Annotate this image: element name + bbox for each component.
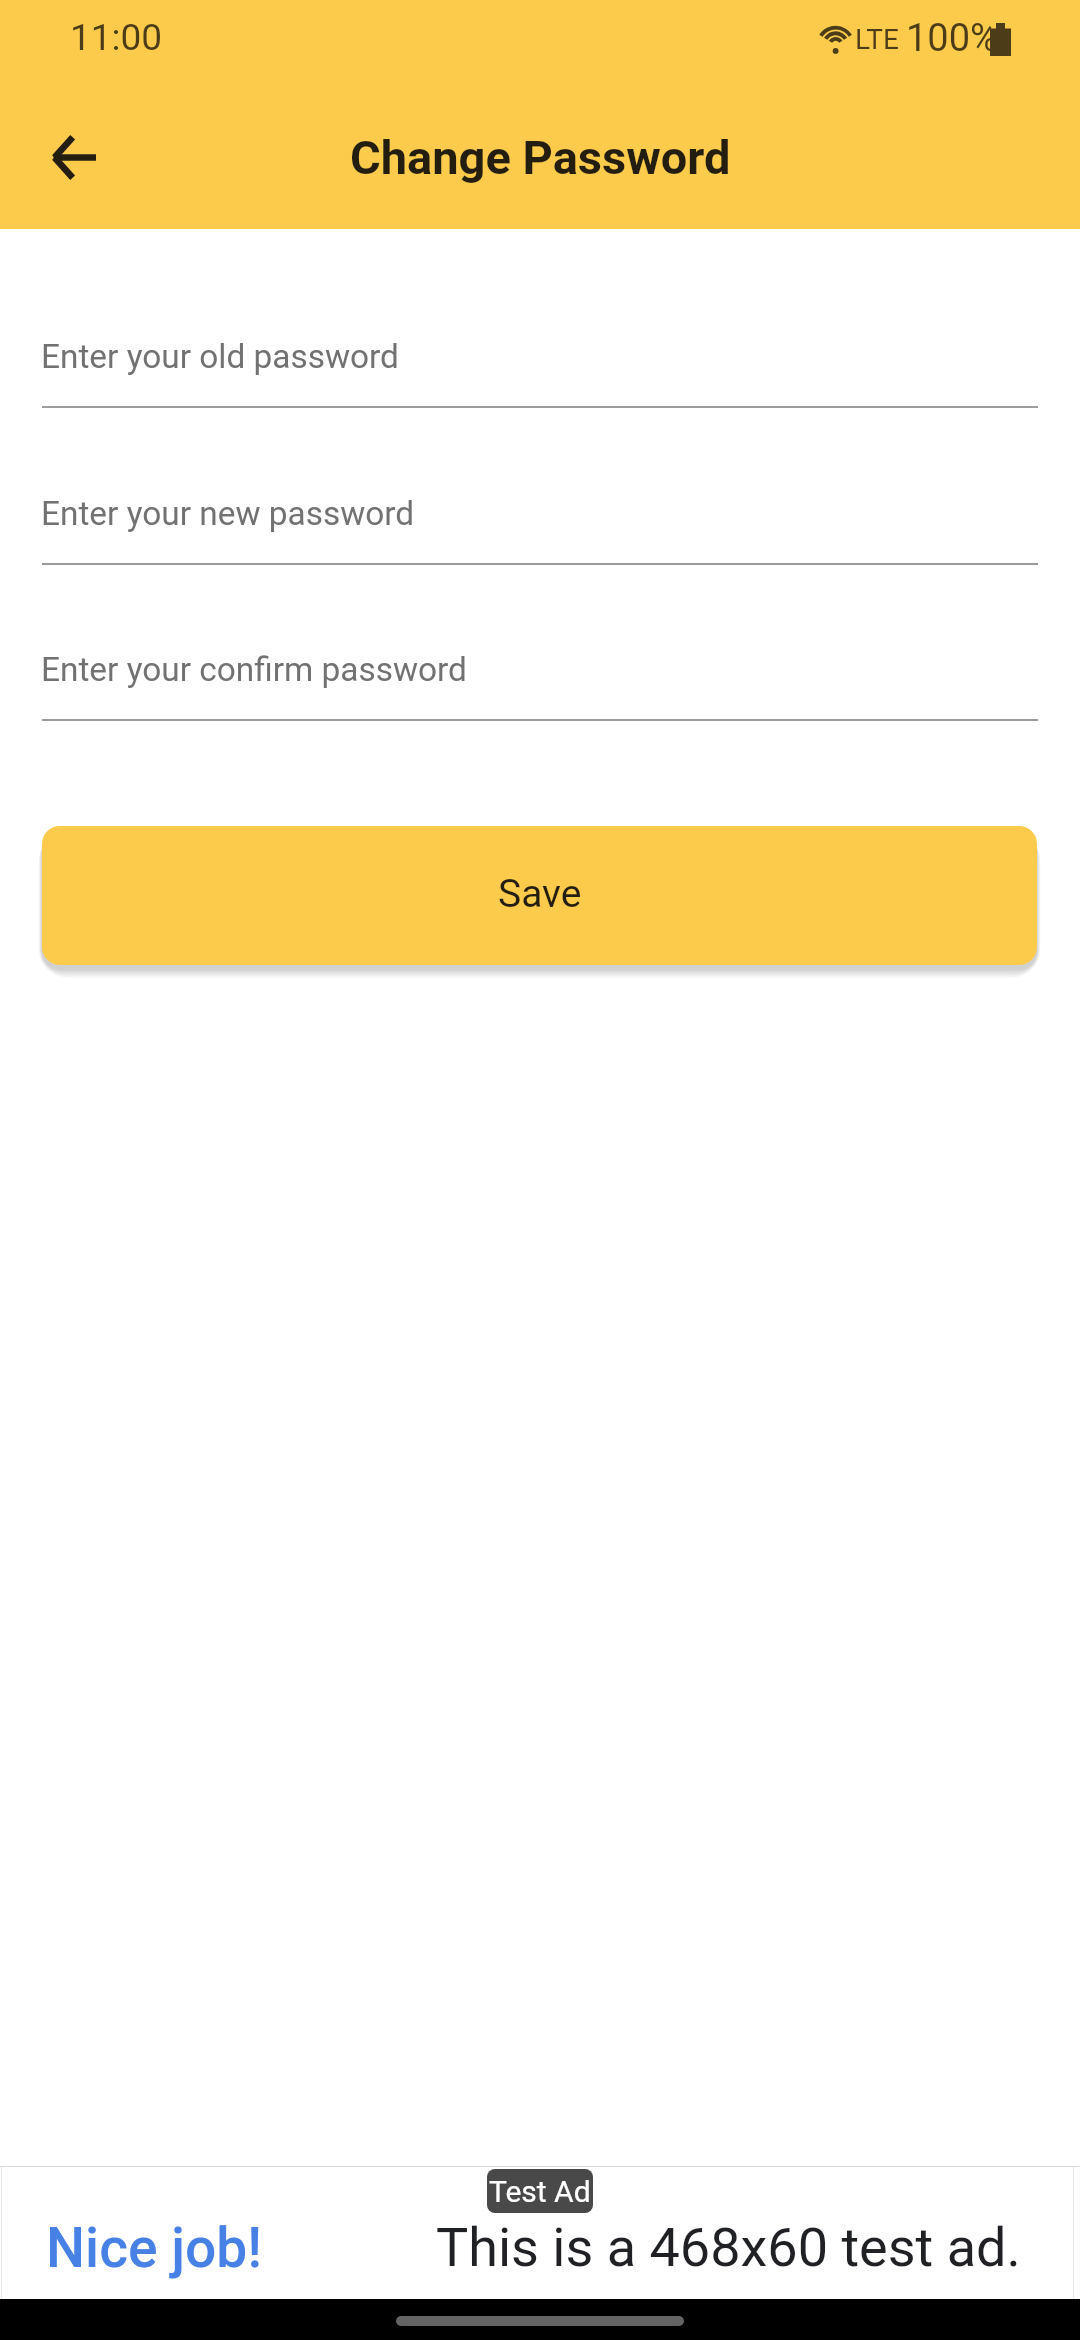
button[interactable]: Enter your new password (42, 476, 1038, 566)
staticText: Save (498, 871, 582, 917)
button[interactable]: Enter your confirm password (42, 632, 1038, 722)
staticText: This is a 468x60 test ad. (436, 2216, 1021, 2279)
staticText: Nice job! (46, 2216, 262, 2280)
staticText: LTE (855, 23, 899, 56)
staticText: Test Ad (489, 2174, 591, 2209)
staticText: Change Password (350, 130, 731, 185)
button[interactable]: Back (30, 113, 118, 201)
staticText: Enter your confirm password (41, 650, 467, 689)
button[interactable]: Save (42, 826, 1037, 965)
staticText: Enter your old password (41, 337, 399, 376)
staticText: 11:00 (70, 16, 163, 59)
staticText: Enter your new password (41, 494, 415, 533)
button[interactable]: Enter your old password (42, 319, 1038, 409)
staticText: 100% (906, 16, 998, 61)
